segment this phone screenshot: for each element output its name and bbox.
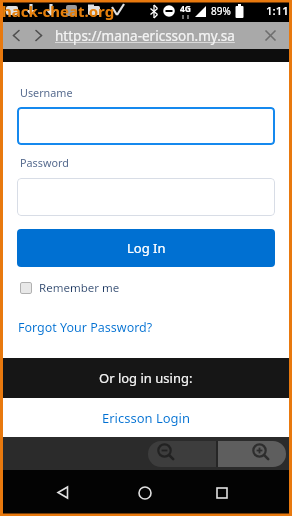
button[interactable] — [35, 30, 43, 41]
button[interactable] — [265, 30, 276, 41]
button[interactable] — [216, 487, 228, 499]
button[interactable] — [218, 441, 286, 467]
button[interactable]: Remember me — [20, 280, 120, 296]
staticText: 89% — [211, 4, 231, 18]
button[interactable] — [56, 486, 69, 499]
staticText: hack-cheat.org — [2, 1, 115, 21]
button[interactable] — [12, 30, 20, 41]
staticText: https://mana-ericsson.my.sa — [55, 27, 235, 45]
staticText: Remember me — [39, 280, 120, 296]
staticText: Password — [20, 155, 69, 170]
button[interactable]: Log In — [17, 229, 275, 267]
staticText: 4G — [180, 3, 192, 15]
button[interactable] — [17, 178, 275, 216]
button[interactable] — [138, 486, 152, 500]
staticText: Ericsson Login — [102, 409, 190, 427]
button[interactable]: Ericsson Login — [0, 398, 292, 437]
staticText: Username — [20, 85, 73, 100]
staticText: Or log in using: — [99, 369, 193, 387]
button[interactable] — [17, 107, 275, 145]
button[interactable]: Forgot Your Password? — [18, 319, 153, 336]
button[interactable] — [148, 441, 216, 467]
staticText: Log In — [127, 239, 166, 257]
staticText: 1:11 — [266, 3, 289, 19]
